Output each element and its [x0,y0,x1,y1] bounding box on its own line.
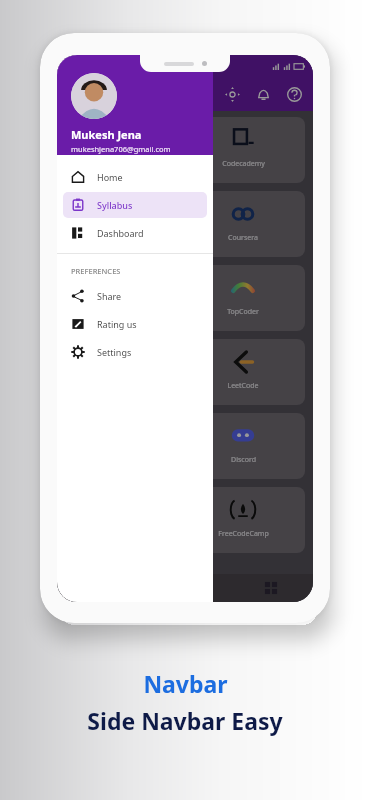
staticText: Side Navbar Easy [87,705,283,736]
button[interactable]: Home [63,164,207,190]
staticText: Dashboard [97,227,144,239]
button[interactable]: Help [286,86,303,103]
staticText: Share [97,290,122,302]
button[interactable]: Mukesh Jena [57,55,213,155]
button[interactable]: Settings [63,339,207,365]
staticText: Codecademy [222,159,265,169]
staticText: Discord [231,455,256,465]
button[interactable]: Share [63,283,207,309]
staticText: Navbar [143,668,228,699]
staticText: FreeCodeCamp [218,529,269,539]
button[interactable]: Syllabus [63,192,207,218]
button[interactable]: CodeChef [65,339,305,405]
staticText: Settings [97,346,132,358]
button[interactable]: W3Schools [65,191,305,257]
button[interactable]: Dashboard [63,220,207,246]
staticText: Rating us [97,318,137,330]
staticText: Syllabus [97,199,133,211]
staticText: W3Schools [109,233,145,243]
staticText: Home [97,171,123,183]
button[interactable]: HackerNews [65,413,305,479]
button[interactable]: GeeksForGeeks [65,117,305,183]
button[interactable]: Grid [263,580,279,596]
staticText: TopCoder [227,307,259,317]
staticText: mukeshjena706@gmail.com [71,144,171,154]
button[interactable]: Rating us [63,311,207,337]
button[interactable]: Locate [224,86,241,103]
button[interactable]: OpenProject [65,487,305,553]
staticText: PREFERENCES [71,266,121,276]
staticText: LeetCode [227,381,259,391]
button[interactable]: Programiz [65,265,305,331]
staticText: Coursera [228,233,258,243]
button[interactable]: Notifications [255,86,272,103]
staticText: Mukesh Jena [71,127,142,142]
